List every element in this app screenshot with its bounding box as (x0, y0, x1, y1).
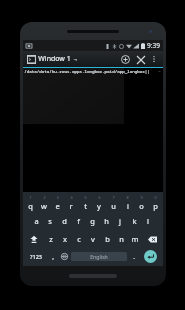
button[interactable]: More options (148, 53, 160, 65)
staticText: p (153, 201, 158, 211)
staticText: l (147, 216, 149, 226)
staticText: y (97, 201, 101, 211)
button[interactable]: 8 (120, 194, 134, 211)
button[interactable]: f (71, 213, 85, 229)
staticText: Window 1 (38, 54, 71, 64)
staticText: s (48, 216, 52, 226)
staticText: 3 (56, 195, 59, 200)
staticText: v (91, 234, 95, 244)
staticText: c (77, 234, 81, 244)
button[interactable]: 9 (134, 194, 148, 211)
staticText: /data/data/hu.rows.apps.longbox.paid/app… (24, 69, 150, 75)
staticText: 7 (112, 195, 115, 200)
button[interactable]: 5 (78, 194, 92, 211)
staticText: ?123 (30, 253, 42, 260)
button[interactable]: Shift (24, 231, 44, 247)
staticText: English (90, 253, 108, 260)
button[interactable]: x (58, 231, 72, 247)
staticText: n (119, 234, 124, 244)
staticText: r (69, 201, 73, 211)
button[interactable]: 2 (37, 194, 50, 211)
staticText: 2 (43, 195, 46, 200)
button[interactable]: n (114, 231, 128, 247)
button[interactable]: d (57, 213, 71, 229)
button[interactable]: , (47, 249, 58, 264)
staticText: 6 (98, 195, 101, 200)
staticText: 0 (154, 195, 157, 200)
staticText: 1 (29, 195, 32, 200)
staticText: . (133, 252, 135, 261)
staticText: m (131, 234, 139, 244)
staticText: u (111, 201, 116, 211)
button[interactable]: Window 1 (26, 54, 78, 64)
staticText: q (28, 201, 33, 211)
button[interactable]: j (113, 213, 127, 229)
button[interactable]: 1 (24, 194, 37, 211)
button[interactable]: s (43, 213, 57, 229)
button[interactable]: . (128, 249, 139, 264)
button[interactable]: b (100, 231, 114, 247)
button[interactable]: 6 (92, 194, 106, 211)
staticText: ~ (158, 69, 161, 75)
button[interactable]: z (44, 231, 58, 247)
button[interactable]: Backspace (142, 231, 162, 247)
button[interactable]: k (127, 213, 141, 229)
button[interactable]: 7 (106, 194, 120, 211)
staticText: t (84, 201, 87, 211)
staticText: k (132, 216, 137, 226)
button[interactable]: Close window (133, 52, 148, 67)
button[interactable]: 3 (50, 194, 64, 211)
staticText: 9:39 (147, 41, 160, 50)
button[interactable]: c (72, 231, 86, 247)
staticText: 9 (140, 195, 143, 200)
staticText: d (62, 216, 67, 226)
button[interactable]: l (141, 213, 155, 229)
staticText: 4 (70, 195, 73, 200)
button[interactable]: h (99, 213, 113, 229)
staticText: 5 (84, 195, 87, 200)
staticText: b (105, 234, 110, 244)
staticText: e (55, 201, 60, 211)
button[interactable]: 0 (148, 194, 162, 211)
button[interactable]: ?123 (24, 249, 47, 264)
staticText: , (52, 252, 54, 261)
staticText: a (34, 216, 39, 226)
button[interactable]: m (128, 231, 142, 247)
button[interactable]: New window (118, 52, 133, 67)
staticText: h (104, 216, 109, 226)
button[interactable]: English (71, 252, 127, 261)
button[interactable]: Change language (58, 249, 70, 264)
staticText: f (77, 216, 80, 226)
staticText: j (119, 216, 121, 226)
button[interactable]: 4 (64, 194, 78, 211)
button[interactable]: a (30, 213, 43, 229)
button[interactable]: Enter (139, 249, 162, 264)
button[interactable]: g (85, 213, 99, 229)
staticText: z (49, 234, 53, 244)
staticText: 8 (126, 195, 129, 200)
button[interactable]: v (86, 231, 100, 247)
staticText: w (41, 201, 47, 211)
button[interactable]: /data/data/hu.rows.apps.longbox.paid/app… (23, 68, 163, 192)
staticText: i (127, 201, 129, 211)
staticText: x (63, 234, 67, 244)
staticText: g (90, 216, 95, 226)
staticText: o (139, 201, 144, 211)
